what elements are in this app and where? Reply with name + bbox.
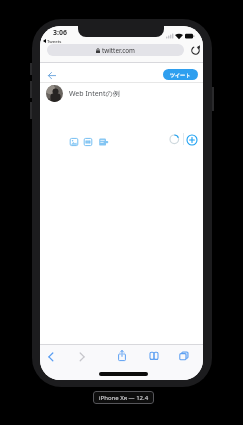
button[interactable]	[82, 136, 94, 148]
staticText: 3:06	[53, 28, 67, 38]
staticText: ツイート	[170, 72, 191, 78]
staticText: iPhone Xʀ — 12.4	[99, 394, 149, 402]
button[interactable]	[186, 134, 198, 146]
button[interactable]	[177, 349, 191, 363]
button[interactable]: twitter.com	[47, 44, 184, 56]
button[interactable]	[97, 136, 109, 148]
button[interactable]	[68, 136, 80, 148]
button[interactable]	[44, 68, 60, 84]
button[interactable]	[147, 349, 161, 363]
button[interactable]	[115, 349, 129, 363]
button[interactable]: iPhone Xʀ — 12.4	[93, 391, 154, 404]
button[interactable]	[46, 85, 63, 102]
staticText: Tweets	[47, 38, 62, 44]
button[interactable]	[75, 350, 89, 364]
staticText: Web Intentの例	[69, 89, 120, 99]
button[interactable]	[189, 44, 202, 57]
staticText: twitter.com	[102, 46, 135, 55]
button[interactable]: ツイート	[163, 69, 198, 80]
button[interactable]	[44, 350, 58, 364]
